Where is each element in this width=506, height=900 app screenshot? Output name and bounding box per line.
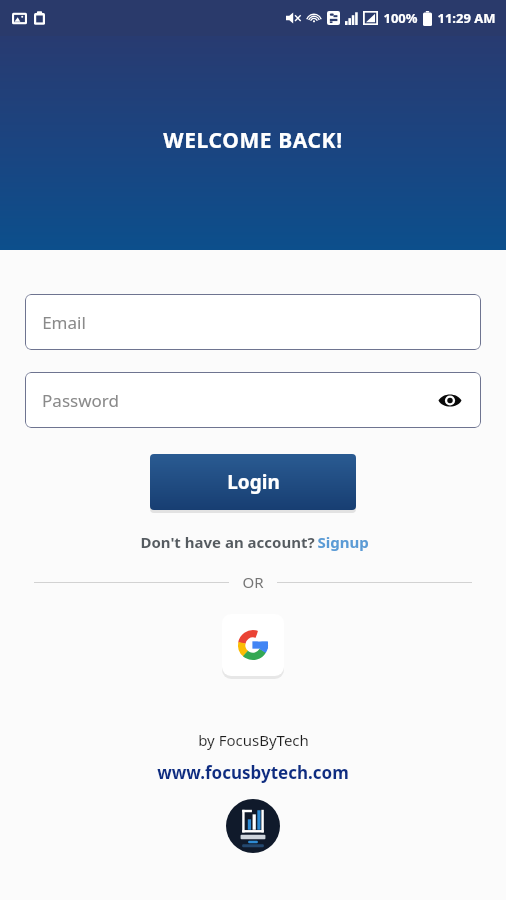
button[interactable]: Don't have an account?: [130, 528, 377, 556]
staticText: Email: [42, 311, 86, 334]
staticText: Password: [42, 389, 119, 412]
staticText: 100%: [383, 9, 418, 27]
staticText: Login: [227, 469, 280, 495]
button[interactable]: www.focusbytech.com: [151, 759, 355, 786]
button[interactable]: Login: [150, 454, 356, 510]
button[interactable]: Password: [25, 372, 481, 428]
staticText: Signup: [317, 532, 369, 552]
staticText: Don't have an account?: [138, 532, 317, 552]
button[interactable]: Show password: [433, 383, 467, 417]
staticText: 11:29 AM: [437, 9, 496, 27]
button[interactable]: Email: [25, 294, 481, 350]
staticText: OR: [242, 572, 264, 592]
staticText: WELCOME BACK!: [163, 126, 343, 155]
button[interactable]: Sign in with Google: [222, 614, 284, 676]
staticText: by FocusByTech: [198, 730, 309, 750]
